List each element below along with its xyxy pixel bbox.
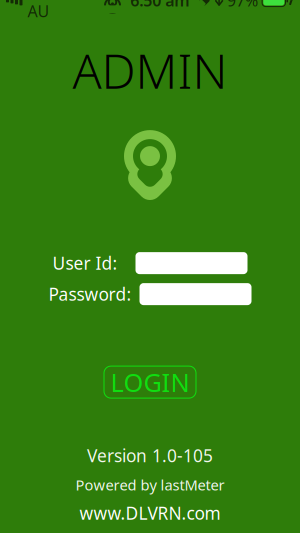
staticText: User Id: <box>52 252 117 275</box>
staticText: 97% <box>227 0 258 11</box>
staticText: Powered by lastMeter <box>75 475 224 495</box>
staticText: www.DLVRN.com <box>79 502 220 525</box>
staticText: vodafone AU <box>27 0 99 22</box>
staticText: ADMIN <box>72 38 227 102</box>
staticText: LOGIN <box>110 365 189 399</box>
staticText: Password: <box>48 283 131 306</box>
staticText: Version 1.0-105 <box>87 444 213 467</box>
staticText: 6:50 am <box>130 0 189 11</box>
button[interactable]: LOGIN <box>104 366 196 398</box>
